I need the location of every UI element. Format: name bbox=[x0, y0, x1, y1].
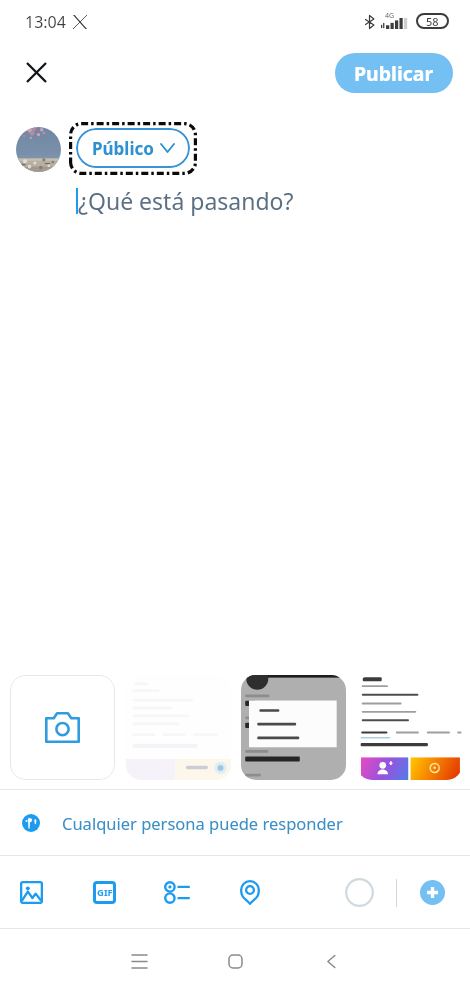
staticText: Público bbox=[92, 137, 154, 160]
button[interactable]: GIF bbox=[83, 871, 125, 913]
button[interactable]: Recientes bbox=[115, 937, 163, 985]
staticText: Publicar bbox=[354, 60, 434, 87]
button[interactable]: Encuesta bbox=[156, 871, 198, 913]
button[interactable]: Atrás bbox=[307, 937, 355, 985]
button[interactable]: Imagen bbox=[10, 871, 52, 913]
staticText: Cualquier persona puede responder bbox=[62, 812, 343, 834]
button[interactable]: Cerrar bbox=[16, 52, 57, 93]
staticText: GIF bbox=[97, 886, 113, 899]
button[interactable]: Ubicación bbox=[229, 871, 271, 913]
staticText: 58 bbox=[426, 14, 439, 29]
button[interactable]: Foto 1 bbox=[126, 675, 231, 780]
button[interactable]: Inicio bbox=[211, 937, 259, 985]
button[interactable]: Cualquier persona puede responder bbox=[0, 790, 470, 855]
button[interactable]: Foto 2 bbox=[241, 675, 346, 780]
button[interactable]: Cámara bbox=[10, 675, 115, 780]
staticText: ¿Qué está pasando? bbox=[78, 185, 294, 216]
button[interactable]: Añadir publicación bbox=[420, 880, 445, 905]
button[interactable]: Publicar bbox=[335, 53, 453, 93]
button[interactable]: Público bbox=[76, 128, 190, 168]
staticText: 4G bbox=[385, 11, 395, 21]
button[interactable]: Foto 3 bbox=[357, 675, 462, 780]
staticText: 13:04 bbox=[25, 11, 66, 33]
